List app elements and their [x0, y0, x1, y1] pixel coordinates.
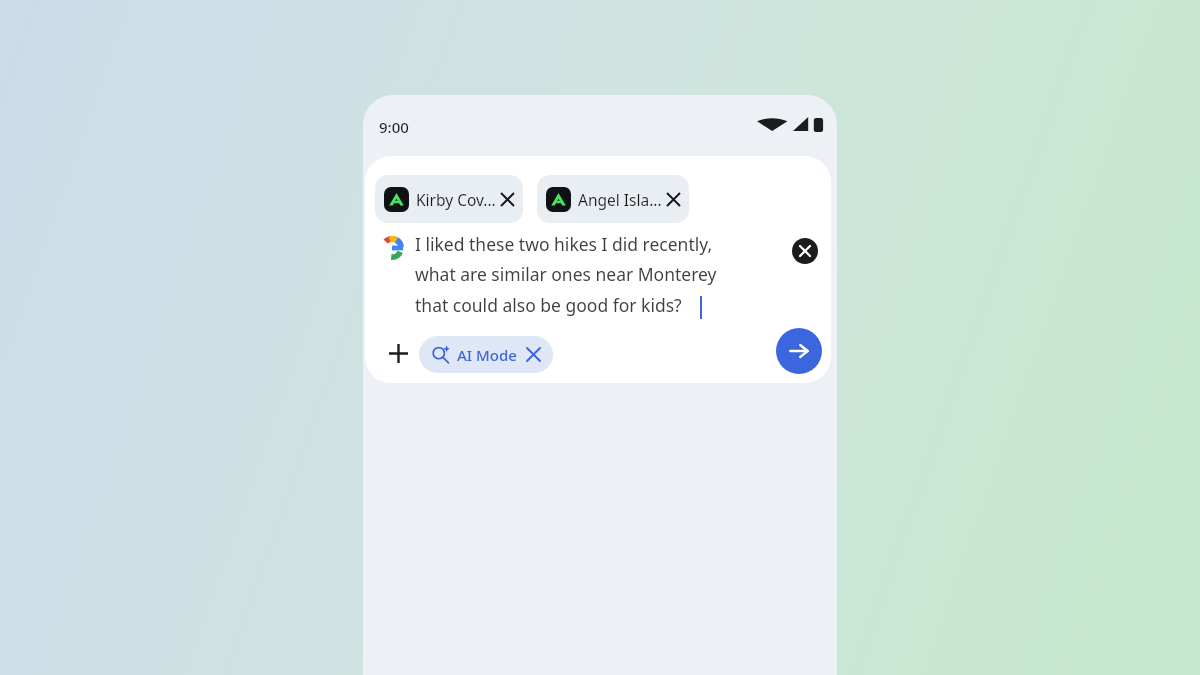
- button[interactable]: Send: [776, 328, 822, 374]
- button[interactable]: Kirby Cov...: [375, 175, 523, 223]
- staticText: Kirby Cov...: [416, 189, 496, 210]
- staticText: 9:00: [379, 117, 409, 137]
- button[interactable]: Clear: [792, 238, 818, 264]
- staticText: AI Mode: [457, 345, 517, 365]
- staticText: I liked these two hikes I did recently, …: [415, 232, 737, 317]
- button[interactable]: Add attachment: [377, 332, 419, 374]
- staticText: Angel Isla...: [578, 189, 662, 210]
- button[interactable]: Angel Isla...: [537, 175, 689, 223]
- button[interactable]: AI Mode: [419, 336, 553, 373]
